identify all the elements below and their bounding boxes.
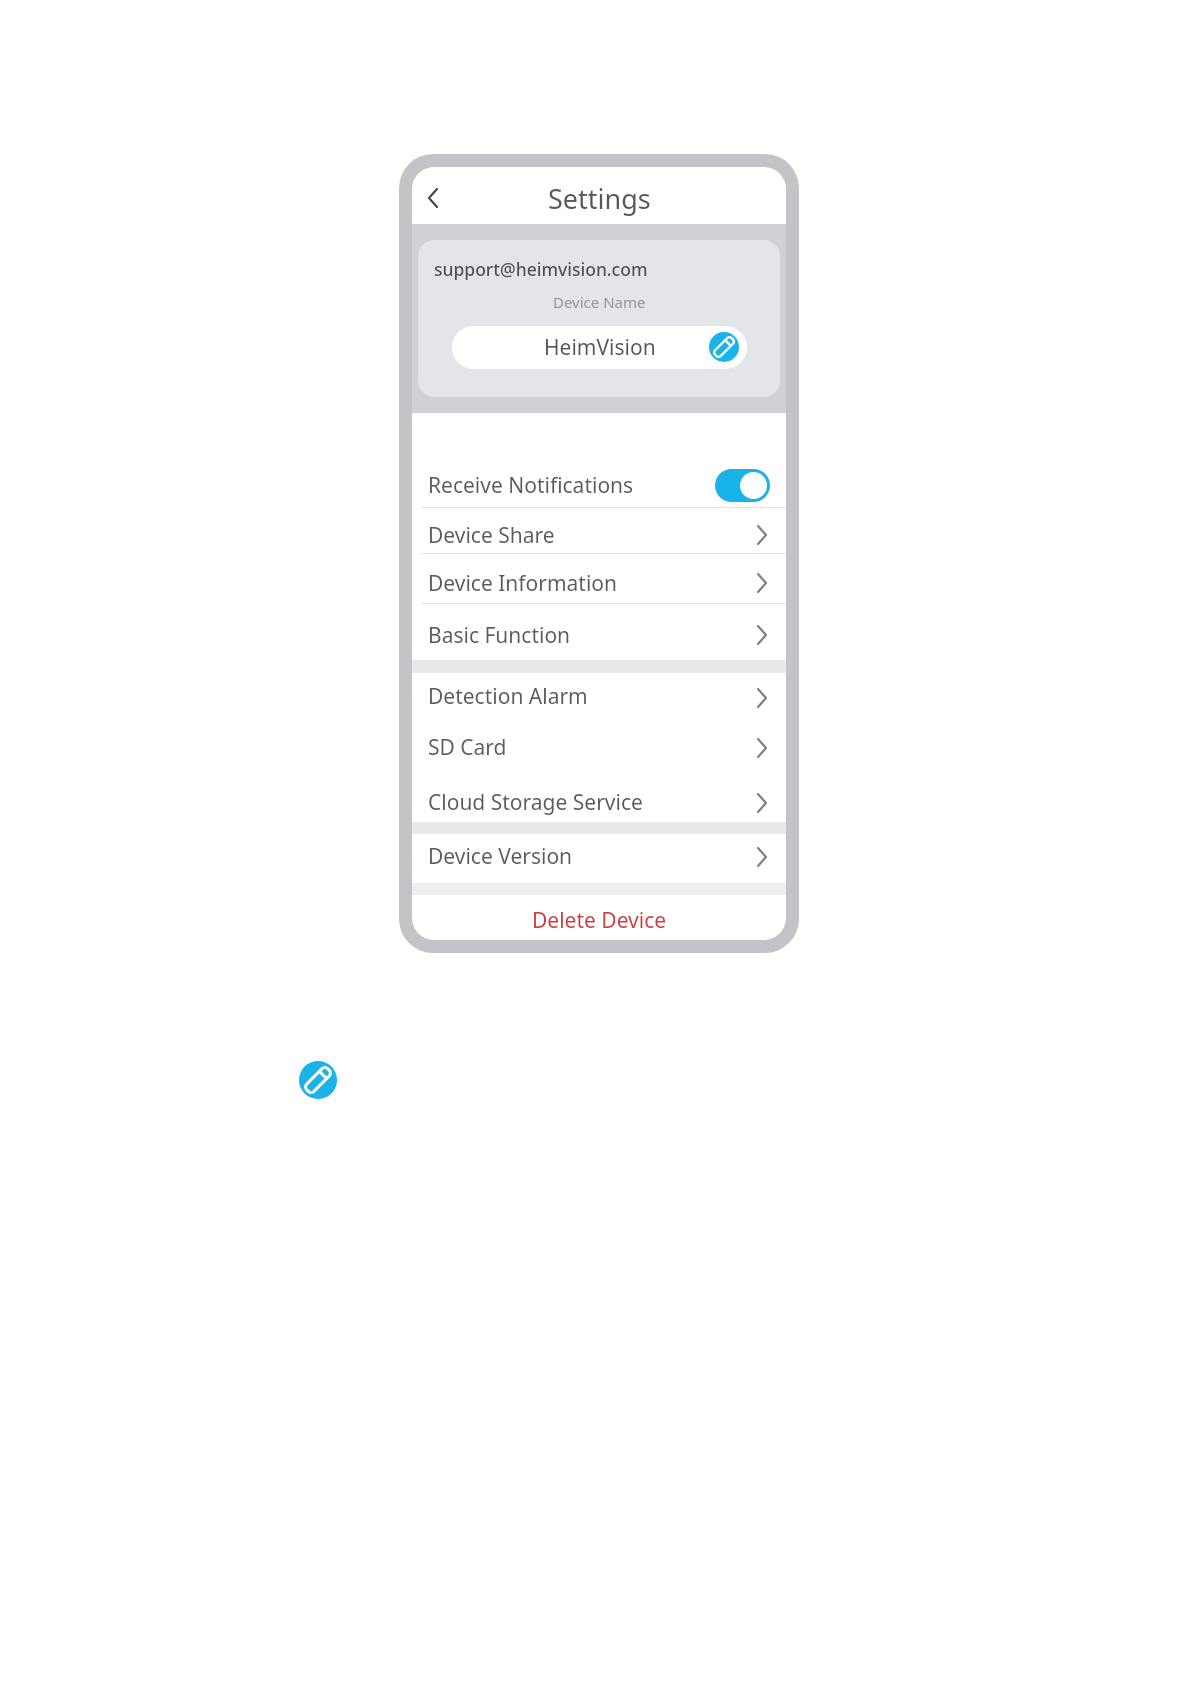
staticText: Delete Device xyxy=(532,906,667,935)
button[interactable]: Detection Alarm xyxy=(428,681,668,711)
button[interactable]: SD Card xyxy=(428,732,668,762)
button[interactable]: Device Information xyxy=(428,568,668,598)
button[interactable]: HeimVision xyxy=(452,326,747,369)
staticText: Cloud Storage Service xyxy=(428,788,643,817)
staticText: HeimVision xyxy=(544,333,656,362)
button[interactable]: Device Share xyxy=(428,520,668,550)
staticText: Device Share xyxy=(428,521,555,550)
button[interactable]: Basic Function xyxy=(428,620,668,650)
staticText: Device Name xyxy=(553,292,646,312)
staticText: Device Version xyxy=(428,842,573,871)
button[interactable] xyxy=(715,469,770,502)
staticText: Detection Alarm xyxy=(428,682,588,711)
staticText: Settings xyxy=(548,180,651,217)
staticText: support@heimvision.com xyxy=(434,257,648,281)
staticText: Device Information xyxy=(428,569,618,598)
staticText: Basic Function xyxy=(428,621,571,650)
button[interactable]: Delete Device xyxy=(412,905,786,935)
staticText: Receive Notifications xyxy=(428,471,634,500)
staticText: SD Card xyxy=(428,733,507,762)
button[interactable] xyxy=(420,185,446,211)
button[interactable] xyxy=(299,1061,337,1099)
button[interactable] xyxy=(709,332,739,362)
button[interactable]: Cloud Storage Service xyxy=(428,787,668,817)
button[interactable]: Device Version xyxy=(428,841,668,871)
